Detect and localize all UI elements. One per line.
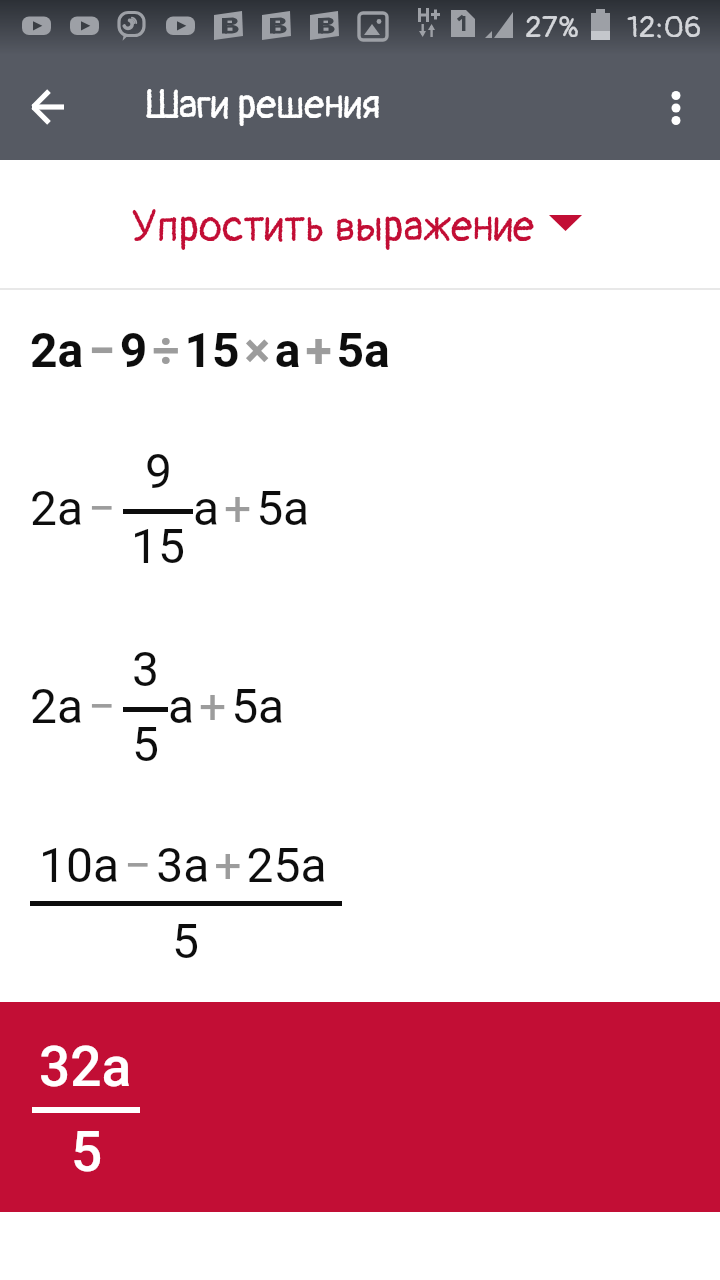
staticText: a + 5a xyxy=(193,480,310,536)
staticText: 2a − xyxy=(30,678,116,734)
staticText: 5 xyxy=(71,1120,103,1184)
staticText: 2a − 9 ÷ 15 × a + 5a xyxy=(30,322,390,378)
staticText: Упростить выражение xyxy=(131,201,534,255)
staticText: a + 5a xyxy=(168,678,285,734)
staticText: 27% xyxy=(525,9,580,46)
staticText: 10a − 3a + 25a xyxy=(39,837,327,893)
staticText: 32a xyxy=(39,1035,132,1099)
staticText: 5 xyxy=(132,716,159,772)
staticText: Шаги решения xyxy=(146,81,381,131)
button[interactable]: More options xyxy=(646,78,706,138)
staticText: 15 xyxy=(131,518,185,574)
staticText: 3 xyxy=(132,641,159,697)
button[interactable]: Упростить выражение xyxy=(0,160,720,277)
staticText: 9 xyxy=(145,443,172,499)
button[interactable]: Back xyxy=(16,75,80,139)
staticText: 12:06 xyxy=(627,9,702,46)
staticText: 5 xyxy=(172,913,199,969)
staticText: 2a − xyxy=(30,480,116,536)
